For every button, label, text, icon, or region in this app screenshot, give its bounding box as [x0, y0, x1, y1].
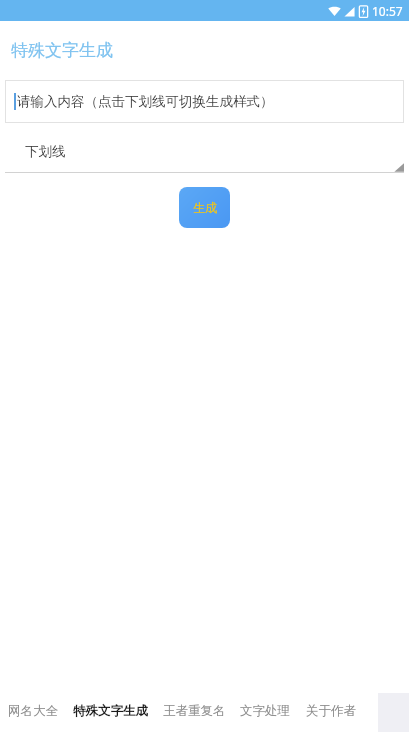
button[interactable]: 请输入内容（点击下划线可切换生成样式） — [5, 80, 404, 123]
staticText: 请输入内容（点击下划线可切换生成样式） — [17, 93, 274, 110]
button[interactable]: 文字处理 — [240, 690, 290, 732]
staticText: 王者重复名 — [163, 703, 226, 719]
staticText: 生成 — [193, 200, 217, 215]
staticText: 文字处理 — [240, 703, 290, 719]
button[interactable]: 网名大全 — [8, 690, 58, 732]
button[interactable]: 生成 — [179, 187, 230, 228]
staticText: 网名大全 — [8, 703, 58, 719]
button[interactable]: 下划线 — [5, 136, 404, 173]
staticText: 特殊文字生成 — [11, 40, 113, 61]
button[interactable]: 王者重复名 — [163, 690, 226, 732]
button[interactable]: 关于作者 — [306, 690, 356, 732]
button[interactable]: 特殊文字生成 — [73, 690, 148, 732]
staticText: 下划线 — [25, 143, 66, 160]
staticText: 关于作者 — [306, 703, 356, 719]
staticText: 特殊文字生成 — [73, 703, 148, 719]
staticText: 10:57 — [372, 3, 403, 19]
